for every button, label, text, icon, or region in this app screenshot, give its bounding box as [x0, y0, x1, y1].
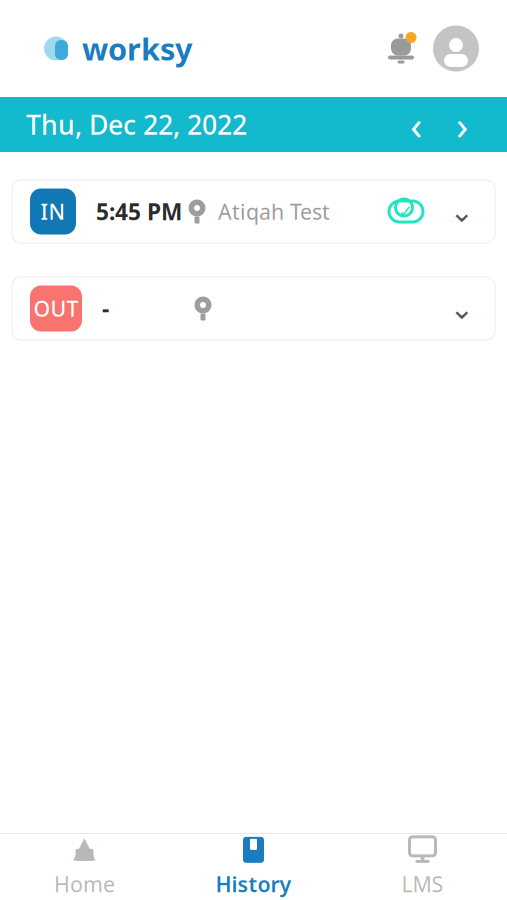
staticText: ✓ [398, 202, 413, 221]
button[interactable]: Notifications [379, 24, 423, 72]
staticText: History [215, 870, 291, 898]
button[interactable]: LMS [338, 834, 507, 900]
button[interactable]: Profile [431, 23, 481, 73]
staticText: Home [54, 870, 115, 898]
staticText: LMS [401, 870, 443, 898]
staticText: OUT [33, 294, 78, 323]
staticText: ⌄ [449, 195, 474, 228]
staticText: › [456, 98, 468, 151]
staticText: 5:45 PM [96, 196, 182, 226]
button[interactable]: OUT [12, 277, 495, 340]
staticText: worksy [82, 28, 193, 69]
staticText: ‹ [410, 98, 422, 151]
staticText: IN [40, 197, 65, 226]
staticText: - [102, 293, 109, 323]
button[interactable]: IN [12, 180, 495, 243]
button[interactable]: ▲ [0, 834, 169, 900]
staticText: ⌄ [449, 292, 474, 325]
button[interactable]: Previous day [393, 97, 439, 152]
button[interactable]: History [169, 834, 338, 900]
button[interactable]: Next day [439, 97, 485, 152]
staticText: Atiqah Test [218, 197, 330, 226]
staticText: Thu, Dec 22, 2022 [26, 107, 247, 142]
staticText: ▲ [73, 830, 96, 863]
